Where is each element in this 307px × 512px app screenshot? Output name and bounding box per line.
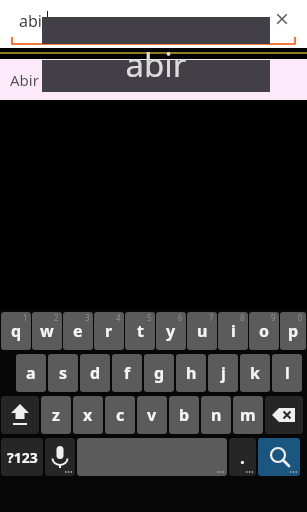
- button[interactable]: y: [156, 312, 186, 350]
- staticText: u: [197, 320, 208, 342]
- button[interactable]: q: [1, 312, 31, 350]
- staticText: 1: [23, 312, 28, 323]
- button[interactable]: n: [201, 396, 231, 434]
- staticText: o: [259, 320, 270, 342]
- staticText: z: [52, 404, 60, 426]
- button[interactable]: Voice input: [45, 438, 75, 476]
- staticText: f: [124, 362, 131, 384]
- staticText: a: [26, 362, 36, 384]
- button[interactable]: f: [112, 354, 142, 392]
- button[interactable]: Clear text: [270, 7, 294, 31]
- button[interactable]: u: [187, 312, 217, 350]
- staticText: 8: [240, 312, 245, 323]
- button[interactable]: a: [16, 354, 46, 392]
- button[interactable]: x: [73, 396, 103, 434]
- staticText: ?123: [7, 448, 38, 467]
- button[interactable]: w: [32, 312, 62, 350]
- button[interactable]: p: [280, 312, 306, 350]
- staticText: g: [154, 362, 165, 384]
- button[interactable]: l: [272, 354, 302, 392]
- staticText: e: [73, 320, 83, 342]
- staticText: 7: [209, 312, 214, 323]
- button[interactable]: m: [233, 396, 263, 434]
- staticText: t: [137, 320, 144, 342]
- button[interactable]: t: [125, 312, 155, 350]
- staticText: x: [83, 404, 93, 426]
- staticText: p: [288, 320, 299, 342]
- staticText: 6: [178, 312, 183, 323]
- staticText: l: [285, 362, 290, 384]
- staticText: c: [116, 404, 125, 426]
- button[interactable]: .: [229, 438, 256, 476]
- staticText: n: [211, 404, 222, 426]
- button[interactable]: Delete: [265, 396, 303, 434]
- button[interactable]: e: [63, 312, 93, 350]
- staticText: 0: [298, 312, 303, 323]
- staticText: Abir আবির রঙ Boy Bangla: [10, 70, 178, 90]
- staticText: i: [231, 320, 236, 342]
- button[interactable]: c: [105, 396, 135, 434]
- button[interactable]: Space: [77, 438, 227, 476]
- staticText: abir: [42, 42, 270, 87]
- button[interactable]: g: [144, 354, 174, 392]
- staticText: d: [90, 362, 101, 384]
- staticText: h: [186, 362, 197, 384]
- button[interactable]: j: [208, 354, 238, 392]
- staticText: 9: [271, 312, 276, 323]
- staticText: abir: [19, 10, 49, 32]
- button[interactable]: Abir আবির রঙ Boy Bangla: [0, 59, 307, 100]
- button[interactable]: Search: [258, 438, 300, 476]
- button[interactable]: r: [94, 312, 124, 350]
- button[interactable]: ?123: [1, 438, 43, 476]
- staticText: 4: [116, 312, 121, 323]
- staticText: 3: [85, 312, 90, 323]
- staticText: j: [221, 362, 226, 384]
- button[interactable]: k: [240, 354, 270, 392]
- staticText: 2: [54, 312, 59, 323]
- button[interactable]: z: [41, 396, 71, 434]
- staticText: q: [11, 320, 22, 342]
- staticText: 5: [147, 312, 152, 323]
- staticText: s: [59, 362, 68, 384]
- staticText: b: [179, 404, 190, 426]
- staticText: k: [250, 362, 260, 384]
- button[interactable]: v: [137, 396, 167, 434]
- staticText: m: [240, 404, 256, 426]
- button[interactable]: i: [218, 312, 248, 350]
- staticText: .: [240, 446, 245, 469]
- button[interactable]: o: [249, 312, 279, 350]
- button[interactable]: d: [80, 354, 110, 392]
- staticText: v: [147, 404, 157, 426]
- button[interactable]: Shift: [1, 396, 39, 434]
- button[interactable]: s: [48, 354, 78, 392]
- staticText: y: [166, 320, 176, 342]
- button[interactable]: b: [169, 396, 199, 434]
- button[interactable]: abir: [0, 0, 307, 48]
- staticText: w: [40, 320, 54, 342]
- button[interactable]: h: [176, 354, 206, 392]
- staticText: r: [105, 320, 113, 342]
